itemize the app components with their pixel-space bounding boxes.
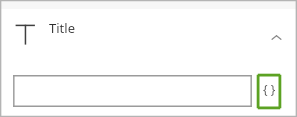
- button[interactable]: Collapse: [263, 23, 291, 51]
- staticText: Title: [49, 19, 75, 37]
- button[interactable]: Title: [0, 9, 297, 61]
- button[interactable]: Title value: [13, 75, 252, 107]
- button[interactable]: { }: [256, 73, 282, 110]
- staticText: { }: [263, 81, 276, 97]
